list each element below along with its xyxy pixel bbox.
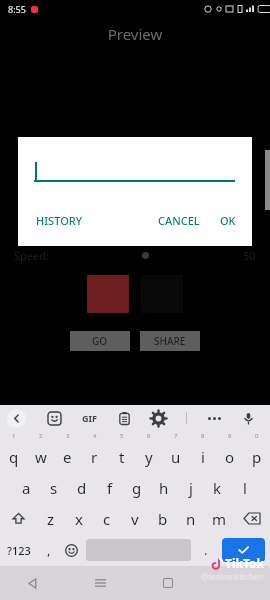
button[interactable]: Settings: [152, 412, 165, 425]
button[interactable]: More options: [208, 417, 221, 420]
staticText: 5: [120, 432, 124, 440]
button[interactable]: k: [204, 472, 231, 503]
button[interactable]: l: [231, 472, 258, 503]
staticText: 2: [39, 432, 43, 440]
button[interactable]: t: [108, 441, 135, 472]
staticText: 8: [201, 432, 205, 440]
staticText: w: [35, 447, 47, 467]
staticText: b: [158, 509, 168, 529]
staticText: l: [243, 478, 247, 498]
button[interactable]: Backspace: [233, 503, 270, 534]
button[interactable]: Stickers: [48, 412, 61, 425]
button[interactable]: GO: [70, 331, 130, 351]
staticText: q: [9, 447, 19, 467]
button[interactable]: ,: [37, 534, 60, 566]
staticText: SHARE: [154, 334, 186, 348]
staticText: c: [103, 509, 111, 529]
staticText: k: [213, 478, 222, 498]
staticText: @wawankitchen: [201, 571, 264, 582]
staticText: GIF: [82, 412, 97, 424]
button[interactable]: u: [162, 441, 189, 472]
button[interactable]: e: [54, 441, 81, 472]
button[interactable]: Shift: [0, 503, 37, 534]
button[interactable]: c: [93, 503, 121, 534]
staticText: 1: [12, 432, 16, 440]
staticText: n: [186, 509, 196, 529]
button[interactable]: Recents: [67, 566, 134, 600]
staticText: Preview: [0, 24, 270, 44]
staticText: .: [204, 541, 208, 559]
button[interactable]: z: [37, 503, 65, 534]
button[interactable]: y: [135, 441, 162, 472]
staticText: ?123: [7, 543, 31, 558]
button[interactable]: m: [205, 503, 233, 534]
button[interactable]: Enter: [222, 538, 265, 562]
staticText: 0: [255, 432, 259, 440]
staticText: s: [50, 478, 58, 498]
staticText: o: [225, 447, 235, 467]
staticText: 50: [243, 248, 256, 263]
button[interactable]: g: [123, 472, 150, 503]
staticText: h: [159, 478, 169, 498]
button[interactable]: d: [68, 472, 96, 503]
button[interactable]: Back: [0, 566, 67, 600]
staticText: f: [107, 478, 113, 498]
staticText: 7: [174, 432, 178, 440]
button[interactable]: q: [0, 441, 27, 472]
button[interactable]: Home: [134, 566, 202, 600]
button[interactable]: SHARE: [140, 331, 200, 351]
button[interactable]: .: [194, 534, 217, 566]
button[interactable]: o: [216, 441, 243, 472]
staticText: ,: [47, 541, 51, 559]
button[interactable]: ?123: [0, 534, 37, 566]
staticText: p: [252, 447, 262, 467]
staticText: OK: [220, 213, 236, 228]
staticText: x: [75, 509, 83, 529]
button[interactable]: GIF: [82, 412, 97, 424]
button[interactable]: Clipboard: [118, 412, 131, 425]
staticText: 3: [66, 432, 70, 440]
staticText: j: [189, 478, 193, 498]
button[interactable]: CANCEL: [156, 211, 202, 230]
staticText: Speed:: [14, 248, 49, 263]
staticText: u: [171, 447, 181, 467]
button[interactable]: a: [12, 472, 40, 503]
button[interactable]: HISTORY: [34, 211, 85, 230]
button[interactable]: v: [121, 503, 149, 534]
button[interactable]: OK: [218, 211, 238, 230]
staticText: d: [77, 478, 87, 498]
button[interactable]: Voice input: [242, 412, 255, 425]
button[interactable]: j: [177, 472, 204, 503]
button[interactable]: x: [65, 503, 93, 534]
button[interactable]: i: [189, 441, 216, 472]
button[interactable]: s: [40, 472, 68, 503]
staticText: a: [22, 478, 31, 498]
button[interactable]: r: [81, 441, 108, 472]
staticText: v: [131, 509, 139, 529]
staticText: HISTORY: [36, 213, 83, 228]
button[interactable]: f: [96, 472, 123, 503]
staticText: e: [63, 447, 72, 467]
staticText: 9: [228, 432, 232, 440]
button[interactable]: n: [177, 503, 205, 534]
staticText: TikTok: [225, 555, 264, 571]
staticText: 6: [147, 432, 151, 440]
staticText: 8:55: [8, 3, 26, 15]
staticText: z: [47, 509, 55, 529]
staticText: CANCEL: [158, 213, 200, 228]
button[interactable]: Emoji: [60, 534, 83, 566]
button[interactable]: h: [150, 472, 177, 503]
staticText: m: [212, 509, 227, 529]
button[interactable]: Back: [7, 409, 26, 428]
button[interactable]: b: [149, 503, 177, 534]
button[interactable]: p: [243, 441, 270, 472]
staticText: t: [119, 447, 125, 467]
staticText: GO: [92, 334, 108, 348]
staticText: i: [201, 447, 205, 467]
staticText: g: [132, 478, 142, 498]
button[interactable]: w: [27, 441, 54, 472]
staticText: r: [91, 447, 98, 467]
